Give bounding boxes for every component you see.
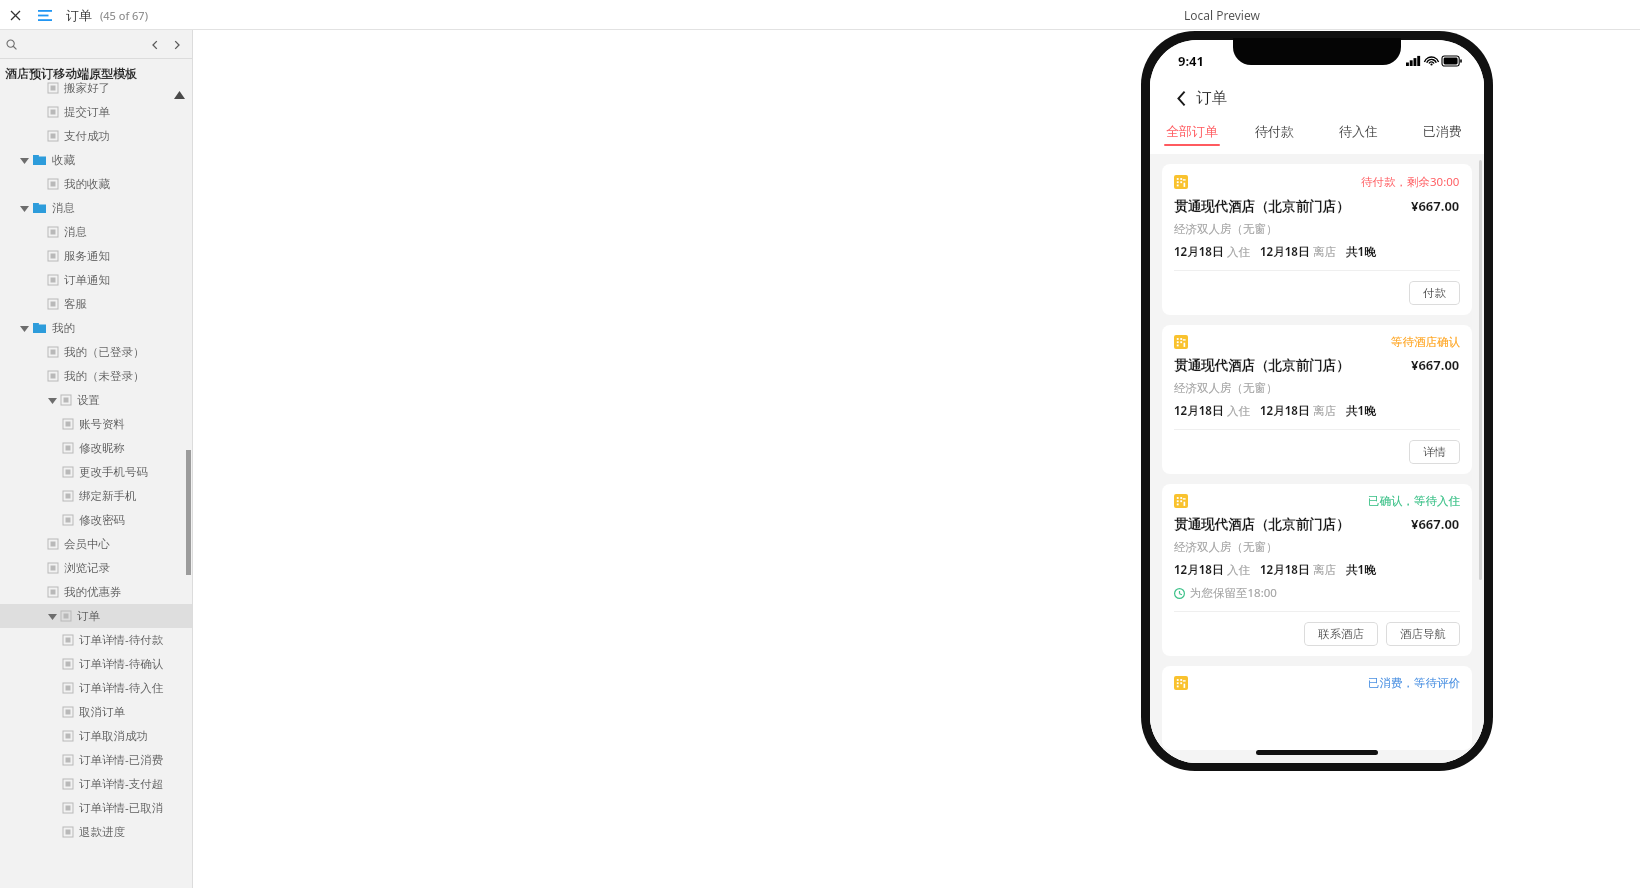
staticText: 贯通现代酒店（北京前门店） <box>1174 198 1350 215</box>
button[interactable]: 支付成功 <box>0 124 193 148</box>
button[interactable]: 消息 <box>0 196 193 220</box>
button[interactable]: 订单取消成功 <box>0 724 193 748</box>
staticText: 12月18日 <box>1174 244 1224 260</box>
staticText: 修改昵称 <box>79 441 125 455</box>
staticText: 绑定新手机 <box>79 489 137 503</box>
staticText: 待付款，剩余30:00 <box>1361 174 1460 190</box>
button[interactable]: 修改密码 <box>0 508 193 532</box>
staticText: 离店 <box>1313 563 1336 577</box>
button[interactable]: 提交订单 <box>0 100 193 124</box>
button[interactable]: 退款进度 <box>0 820 193 844</box>
staticText: 消息 <box>64 225 87 239</box>
staticText: 取消订单 <box>79 705 125 719</box>
button[interactable]: Menu <box>30 0 60 30</box>
staticText: 入住 <box>1227 563 1250 577</box>
button[interactable]: 绑定新手机 <box>0 484 193 508</box>
staticText: 更改手机号码 <box>79 465 148 479</box>
staticText: 经济双人房（无窗） <box>1174 540 1278 554</box>
staticText: ¥667.00 <box>1411 356 1460 374</box>
staticText: 12月18日 <box>1174 403 1224 419</box>
staticText: Local Preview <box>1184 7 1260 23</box>
button[interactable]: 订单详情-待确认 <box>0 652 193 676</box>
staticText: 等待酒店确认 <box>1391 335 1460 349</box>
button[interactable]: 我的（未登录） <box>0 364 193 388</box>
button[interactable]: 待付款 <box>1233 118 1316 154</box>
button[interactable]: 我的（已登录） <box>0 340 193 364</box>
staticText: 已确认，等待入住 <box>1368 494 1460 508</box>
button[interactable]: 设置 <box>0 388 193 412</box>
staticText: 提交订单 <box>64 105 110 119</box>
button[interactable]: 浏览记录 <box>0 556 193 580</box>
button[interactable]: 订单详情-待付款 <box>0 628 193 652</box>
button[interactable]: Close <box>0 0 30 30</box>
button[interactable]: 已确认，等待入住 <box>1162 484 1472 656</box>
staticText: 服务通知 <box>64 249 110 263</box>
staticText: 支付成功 <box>64 129 110 143</box>
staticText: 联系酒店 <box>1318 627 1364 641</box>
button[interactable]: 订单详情-已消费 <box>0 748 193 772</box>
staticText: 会员中心 <box>64 537 110 551</box>
button[interactable]: 我的收藏 <box>0 172 193 196</box>
button[interactable]: 客服 <box>0 292 193 316</box>
staticText: 我的收藏 <box>64 177 110 191</box>
staticText: 详情 <box>1423 445 1446 459</box>
staticText: 酒店导航 <box>1400 627 1446 641</box>
button[interactable]: 待入住 <box>1316 118 1400 154</box>
staticText: ¥667.00 <box>1411 515 1460 533</box>
button[interactable]: 订单详情-已取消 <box>0 796 193 820</box>
button[interactable]: 已消费 <box>1400 118 1484 154</box>
button[interactable]: Next <box>165 33 189 57</box>
button[interactable]: 已消费，等待评价 <box>1162 666 1472 750</box>
staticText: 订单详情-待入住 <box>79 680 164 696</box>
staticText: 经济双人房（无窗） <box>1174 381 1278 395</box>
staticText: 共1晚 <box>1346 244 1376 260</box>
button[interactable]: 消息 <box>0 220 193 244</box>
button[interactable]: 订单通知 <box>0 268 193 292</box>
staticText: 订单详情-支付超 <box>79 776 164 792</box>
staticText: 退款进度 <box>79 825 125 839</box>
staticText: 经济双人房（无窗） <box>1174 222 1278 236</box>
button[interactable]: 我的 <box>0 316 193 340</box>
staticText: 离店 <box>1313 245 1336 259</box>
staticText: 贯通现代酒店（北京前门店） <box>1174 357 1350 374</box>
staticText: 我的优惠券 <box>64 585 122 599</box>
staticText: 账号资料 <box>79 417 125 431</box>
button[interactable]: 订单详情-待入住 <box>0 676 193 700</box>
staticText: 付款 <box>1423 286 1446 300</box>
staticText: 搬家好了 <box>64 81 110 95</box>
button[interactable]: 全部订单 <box>1150 118 1233 154</box>
button[interactable]: 订单 <box>0 604 193 628</box>
staticText: 我的 <box>52 321 75 335</box>
button[interactable]: 收藏 <box>0 148 193 172</box>
staticText: 收藏 <box>52 153 75 167</box>
button[interactable]: 酒店导航 <box>1386 622 1460 646</box>
button[interactable]: 付款 <box>1409 281 1460 305</box>
button[interactable]: 账号资料 <box>0 412 193 436</box>
staticText: 我的（未登录） <box>64 369 145 383</box>
button[interactable]: 服务通知 <box>0 244 193 268</box>
staticText: 9:41 <box>1178 52 1204 70</box>
staticText: 订单详情-待付款 <box>79 632 164 648</box>
button[interactable]: Back <box>1166 83 1196 113</box>
staticText: 贯通现代酒店（北京前门店） <box>1174 516 1350 533</box>
staticText: 设置 <box>77 393 100 407</box>
button[interactable]: 详情 <box>1409 440 1460 464</box>
staticText: 订单 <box>66 7 92 23</box>
button[interactable]: 订单详情-支付超 <box>0 772 193 796</box>
staticText: 共1晚 <box>1346 562 1376 578</box>
button[interactable]: Previous <box>143 33 167 57</box>
button[interactable]: 等待酒店确认 <box>1162 325 1472 474</box>
button[interactable]: 更改手机号码 <box>0 460 193 484</box>
button[interactable]: 取消订单 <box>0 700 193 724</box>
button[interactable]: 联系酒店 <box>1304 622 1378 646</box>
staticText: 共1晚 <box>1346 403 1376 419</box>
staticText: 订单详情-待确认 <box>79 656 164 672</box>
staticText: 12月18日 <box>1260 244 1310 260</box>
button[interactable]: 会员中心 <box>0 532 193 556</box>
button[interactable]: 我的优惠券 <box>0 580 193 604</box>
staticText: 订单 <box>1196 88 1227 108</box>
button[interactable]: 修改昵称 <box>0 436 193 460</box>
staticText: 入住 <box>1227 404 1250 418</box>
staticText: 酒店预订移动端原型模板 <box>5 66 137 81</box>
button[interactable]: 待付款，剩余30:00 <box>1162 164 1472 315</box>
